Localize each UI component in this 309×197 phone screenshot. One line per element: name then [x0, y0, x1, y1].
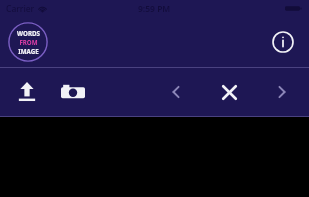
staticText: FROM [19, 38, 38, 46]
staticText: Carrier [6, 3, 35, 15]
staticText: WORDS [17, 29, 40, 37]
staticText: 9:59 PM [138, 3, 171, 15]
button[interactable]: Info [270, 29, 296, 55]
button[interactable]: Next [265, 75, 299, 109]
button[interactable]: Take photo [56, 75, 90, 109]
button[interactable]: Words From Image logo [8, 22, 48, 62]
button[interactable]: Previous [159, 75, 193, 109]
button[interactable]: Close [212, 75, 246, 109]
button[interactable]: Upload image [10, 75, 44, 109]
staticText: IMAGE [18, 47, 39, 55]
